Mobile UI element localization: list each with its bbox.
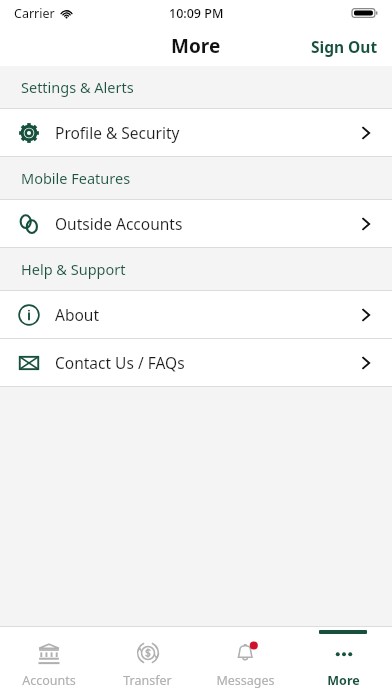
other: Accounts [36, 640, 62, 666]
staticText: About [55, 304, 358, 325]
button[interactable]: Profile & Security [0, 109, 392, 156]
other: Messages [233, 640, 259, 666]
other: Transfer [135, 640, 161, 666]
staticText: Accounts [22, 672, 76, 689]
button[interactable]: Outside Accounts [0, 200, 392, 247]
button[interactable]: Sign Out [297, 28, 392, 65]
button[interactable]: Messages [196, 627, 294, 696]
staticText: More [327, 672, 360, 689]
staticText: Contact Us / FAQs [55, 352, 358, 373]
staticText: Outside Accounts [55, 213, 358, 234]
staticText: Settings & Alerts [21, 77, 134, 97]
button[interactable]: Accounts [0, 627, 98, 696]
button[interactable]: Contact Us / FAQs [0, 339, 392, 386]
staticText: 10:09 PM [169, 5, 224, 22]
button[interactable]: Transfer [98, 627, 196, 696]
button[interactable]: About [0, 291, 392, 338]
staticText: Help & Support [21, 259, 126, 279]
button[interactable]: More [294, 627, 392, 696]
staticText: More [171, 33, 221, 59]
staticText: Transfer [123, 672, 172, 689]
staticText: Sign Out [311, 36, 378, 57]
staticText: Carrier [14, 5, 55, 22]
other: More [331, 640, 357, 666]
staticText: Mobile Features [21, 168, 131, 188]
staticText: Profile & Security [55, 122, 358, 143]
staticText: Messages [216, 672, 275, 689]
